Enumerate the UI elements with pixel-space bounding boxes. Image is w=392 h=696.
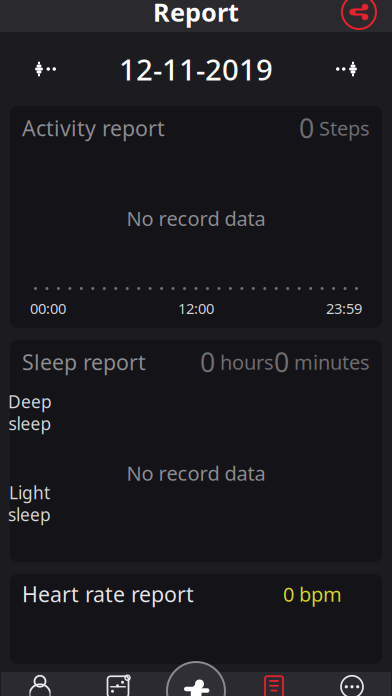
button[interactable]: Start workout xyxy=(167,662,225,696)
staticText: 12:00 xyxy=(178,298,214,318)
button[interactable]: More xyxy=(313,672,391,696)
staticText: 12-11-2019 xyxy=(119,49,273,88)
staticText: 23:59 xyxy=(326,298,362,318)
staticText: Heart rate report xyxy=(22,580,194,608)
button[interactable]: Previous day xyxy=(10,47,80,91)
staticText: Report xyxy=(153,0,239,29)
staticText: Light xyxy=(9,481,50,504)
staticText: No record data xyxy=(126,460,265,486)
staticText: Activity report xyxy=(22,114,165,142)
button[interactable]: Share xyxy=(342,0,376,29)
staticText: 0 xyxy=(274,344,289,380)
staticText: 0 xyxy=(200,344,215,380)
staticText: sleep xyxy=(8,412,51,435)
staticText: 00:00 xyxy=(30,298,66,318)
staticText: 0 bpm xyxy=(283,581,342,607)
staticText: sleep xyxy=(8,503,51,526)
staticText: Sleep report xyxy=(22,348,146,376)
button[interactable]: Report xyxy=(235,672,313,696)
staticText: minutes xyxy=(289,349,370,375)
staticText: No record data xyxy=(126,205,265,232)
button[interactable]: Next day xyxy=(312,47,382,91)
staticText: hours xyxy=(215,349,274,375)
button[interactable]: Analysis xyxy=(79,672,157,696)
staticText: Deep xyxy=(8,390,52,413)
button[interactable]: Me xyxy=(1,672,79,696)
staticText: 0 xyxy=(299,110,314,146)
staticText: Steps xyxy=(319,115,370,141)
